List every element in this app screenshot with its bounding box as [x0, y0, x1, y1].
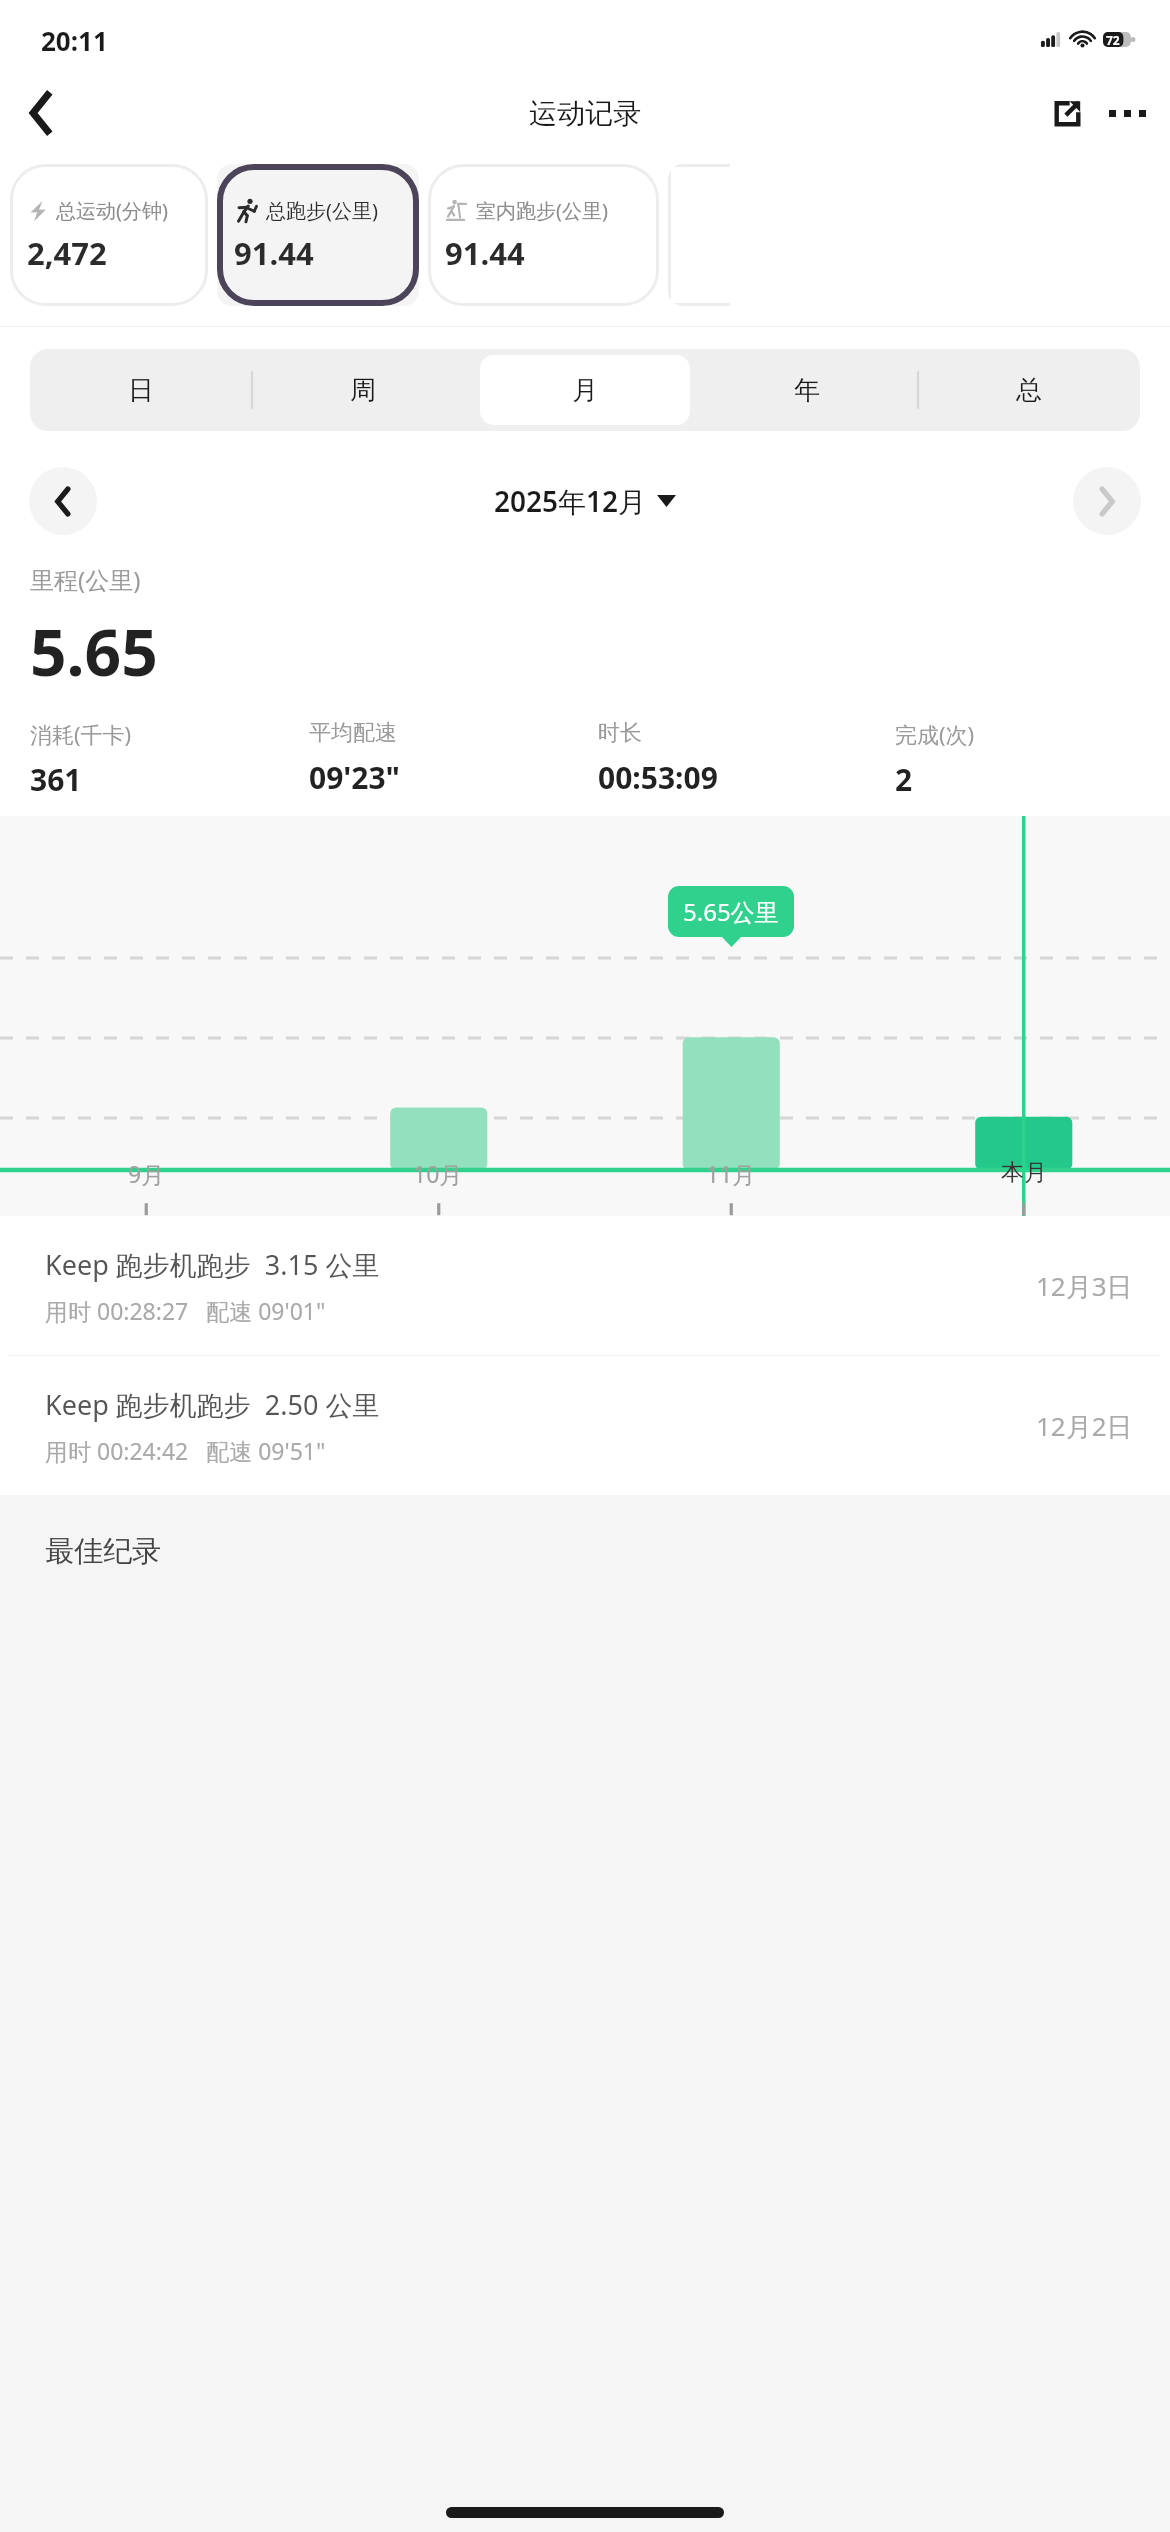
- staticText: 72: [1106, 32, 1120, 47]
- staticText: 20:11: [41, 23, 108, 58]
- staticText: 平均配速: [309, 719, 397, 747]
- staticText: 11月: [706, 1158, 756, 1189]
- button[interactable]: Previous month: [29, 467, 97, 535]
- staticText: 本月: [1001, 1158, 1047, 1187]
- staticText: Keep 跑步机跑步 3.15 公里: [45, 1246, 380, 1283]
- staticText: 00:53:09: [598, 757, 718, 798]
- staticText: 月: [572, 374, 598, 407]
- staticText: 周: [350, 374, 376, 407]
- button[interactable]: 年: [702, 355, 912, 425]
- button[interactable]: Share: [1038, 84, 1096, 142]
- button[interactable]: 2025年12月: [494, 482, 676, 520]
- staticText: 12月2日: [1036, 1408, 1133, 1444]
- staticText: 10月: [413, 1158, 463, 1189]
- button[interactable]: 总运动(分钟): [10, 164, 208, 306]
- staticText: 室内跑步(公里): [476, 197, 608, 224]
- staticText: 09'23": [309, 757, 400, 798]
- staticText: 用时 00:28:27 配速 09'01": [45, 1295, 326, 1326]
- button[interactable]: 日: [36, 355, 246, 425]
- button[interactable]: 月: [480, 355, 690, 425]
- button[interactable]: More metrics: [668, 164, 730, 306]
- button[interactable]: 总: [924, 355, 1134, 425]
- staticText: 2025年12月: [494, 482, 647, 520]
- staticText: 2,472: [27, 232, 107, 274]
- staticText: 12月3日: [1036, 1268, 1133, 1304]
- staticText: 里程(公里): [30, 563, 141, 596]
- staticText: 年: [794, 374, 820, 407]
- staticText: Keep 跑步机跑步 2.50 公里: [45, 1386, 380, 1423]
- button[interactable]: More options: [1098, 84, 1156, 142]
- button[interactable]: 周: [258, 355, 468, 425]
- button[interactable]: Keep 跑步机跑步 2.50 公里: [0, 1356, 1170, 1495]
- staticText: 5.65公里: [683, 895, 779, 928]
- staticText: 完成(次): [895, 719, 975, 749]
- staticText: 时长: [598, 719, 642, 747]
- staticText: 9月: [128, 1158, 165, 1189]
- staticText: 91.44: [234, 232, 314, 274]
- staticText: 日: [128, 374, 154, 407]
- staticText: 总: [1016, 374, 1042, 407]
- button[interactable]: Next month: [1073, 467, 1141, 535]
- staticText: 用时 00:24:42 配速 09'51": [45, 1435, 326, 1466]
- staticText: 91.44: [445, 232, 525, 274]
- staticText: 361: [30, 759, 82, 800]
- staticText: 5.65: [30, 608, 158, 695]
- staticText: 2: [895, 759, 913, 800]
- button[interactable]: Back: [12, 84, 70, 142]
- staticText: 运动记录: [529, 96, 641, 131]
- button[interactable]: 总跑步(公里): [217, 164, 419, 306]
- staticText: 总跑步(公里): [266, 197, 378, 224]
- staticText: 总运动(分钟): [56, 197, 168, 224]
- button[interactable]: Keep 跑步机跑步 3.15 公里: [0, 1216, 1170, 1355]
- staticText: 最佳纪录: [45, 1533, 161, 1570]
- staticText: 消耗(千卡): [30, 719, 132, 749]
- button[interactable]: 室内跑步(公里): [428, 164, 659, 306]
